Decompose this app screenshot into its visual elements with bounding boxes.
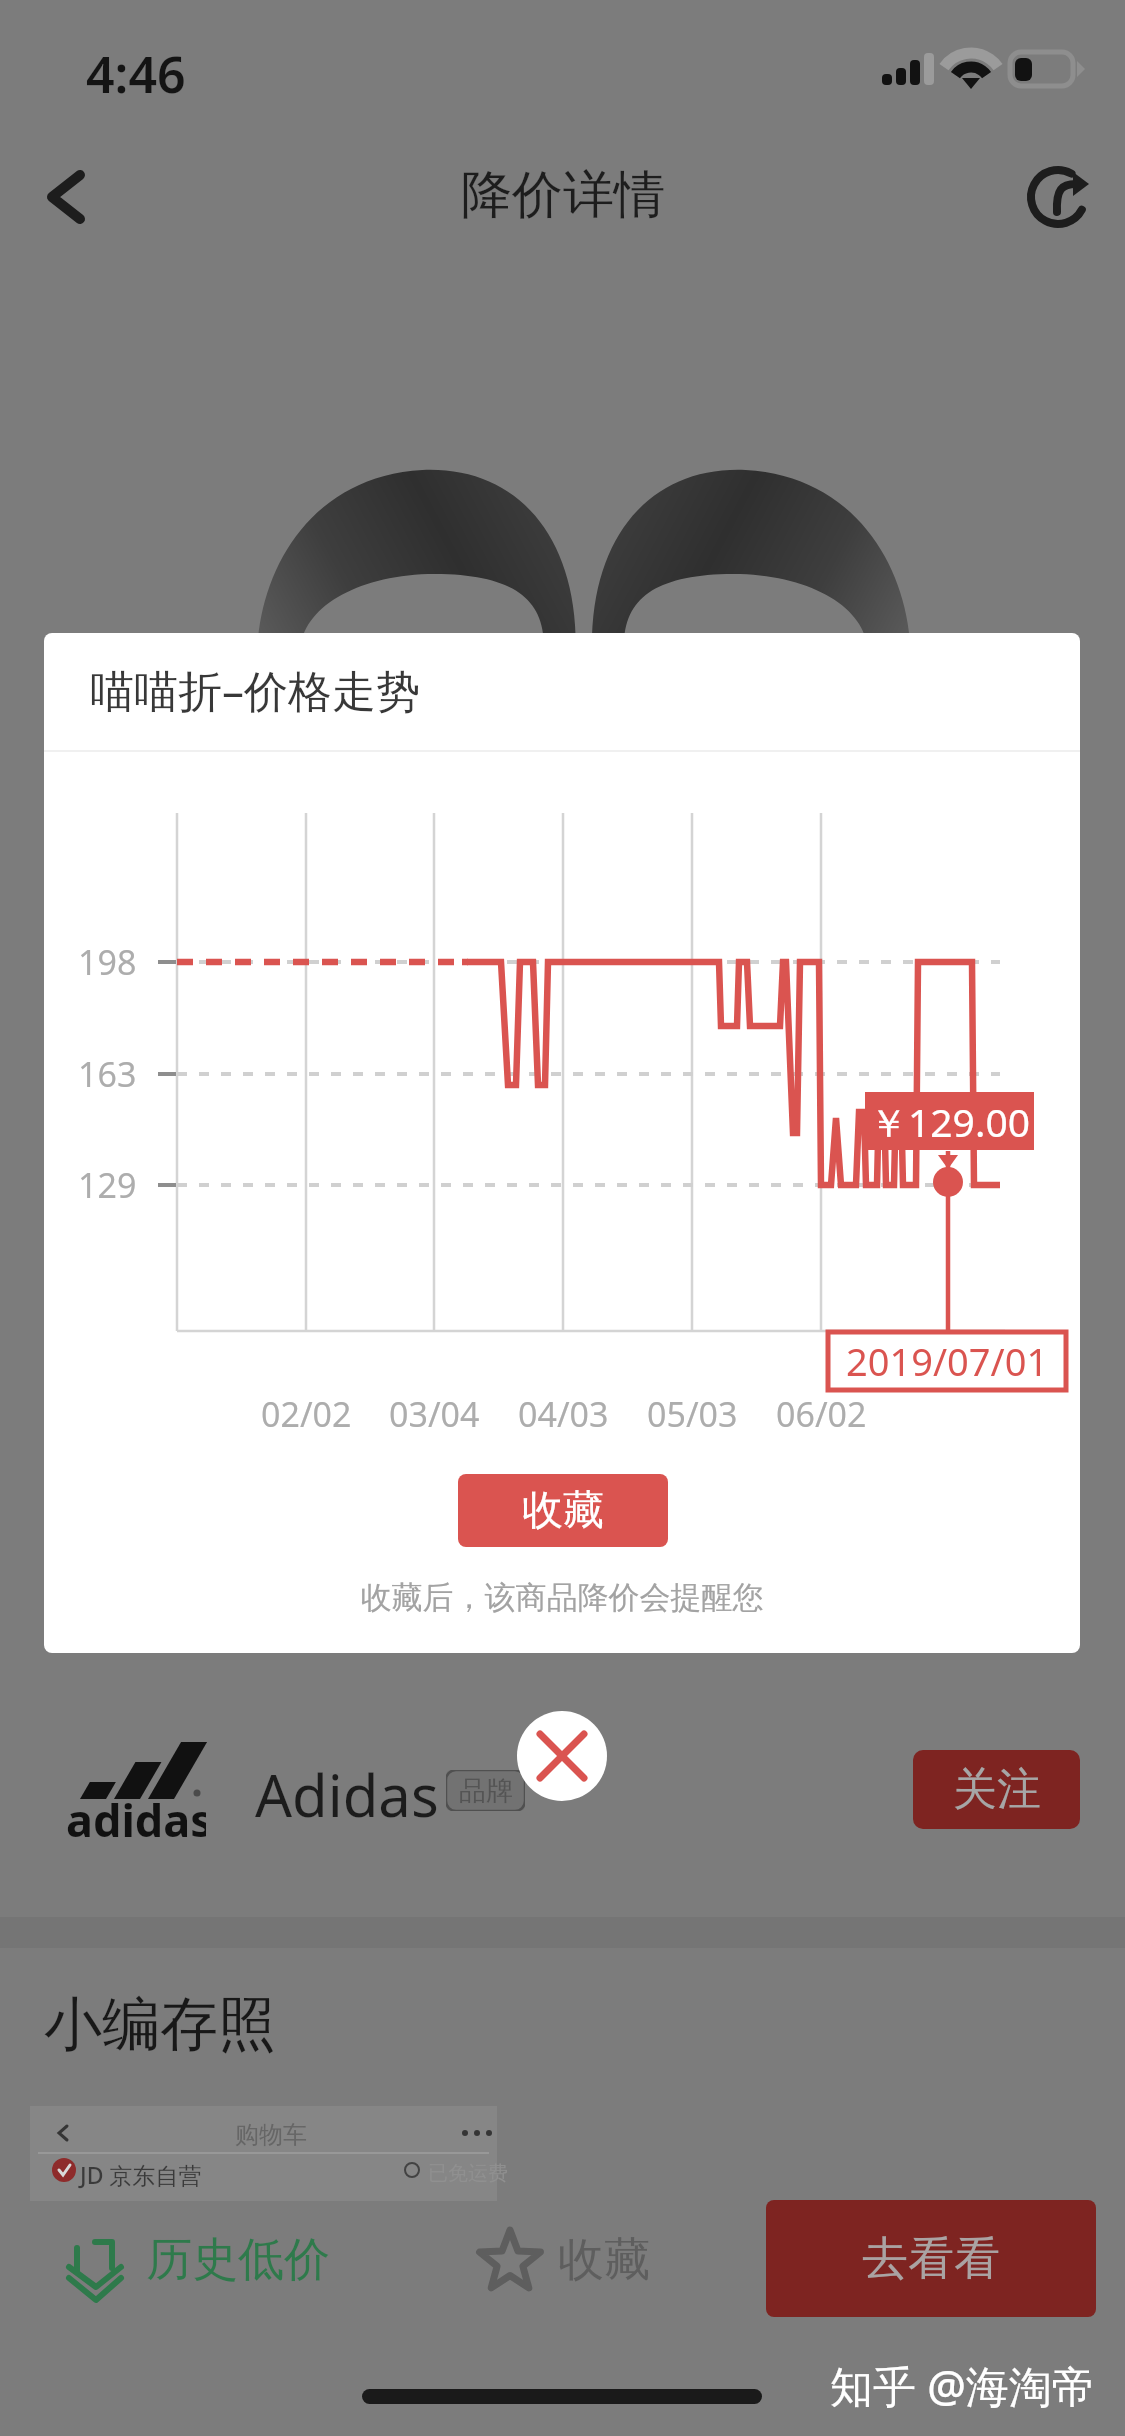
staticText: 历史低价	[146, 2231, 330, 2289]
staticText: 关注	[953, 1762, 1041, 1817]
staticText: 129	[78, 1162, 137, 1208]
staticText: 小编存照	[44, 1988, 276, 2061]
button[interactable]: Back	[14, 147, 114, 247]
button[interactable]: Refresh	[1013, 152, 1103, 242]
staticText: 收藏	[522, 1485, 604, 1537]
staticText: JD 京东自营	[80, 2159, 202, 2190]
staticText: Adidas	[255, 1755, 439, 1834]
button[interactable]: 去看看	[766, 2200, 1096, 2317]
staticText: 收藏	[558, 2231, 650, 2289]
staticText: 05/03	[647, 1391, 738, 1437]
staticText: 收藏后，该商品降价会提醒您	[44, 1578, 1080, 1617]
button[interactable]: 历史低价	[58, 2198, 308, 2322]
staticText: 降价详情	[461, 163, 665, 227]
staticText: 知乎 @海淘帝	[830, 2356, 1095, 2415]
staticText: 已免运费	[428, 2161, 508, 2186]
staticText: 06/02	[776, 1391, 867, 1437]
button[interactable]: 关注	[913, 1750, 1080, 1829]
staticText: 02/02	[261, 1391, 352, 1437]
button[interactable]: 收藏	[458, 1474, 668, 1547]
staticText: ￥129.00	[869, 1095, 1030, 1148]
staticText: 163	[78, 1051, 137, 1097]
staticText: 喵喵折–价格走势	[90, 660, 420, 720]
staticText: adidas	[66, 1789, 206, 1850]
staticText: 198	[78, 939, 137, 985]
staticText: 4:46	[86, 40, 186, 108]
staticText: 购物车	[235, 2120, 307, 2150]
staticText: 品牌	[459, 1774, 513, 1808]
staticText: 04/03	[518, 1391, 609, 1437]
staticText: 03/04	[389, 1391, 480, 1437]
staticText: 去看看	[862, 2230, 1000, 2288]
button[interactable]: Close	[517, 1711, 607, 1801]
button[interactable]: adidas	[0, 1700, 1125, 1880]
staticText: 2019/07/01	[846, 1335, 1049, 1387]
button[interactable]: 收藏	[472, 2198, 640, 2322]
